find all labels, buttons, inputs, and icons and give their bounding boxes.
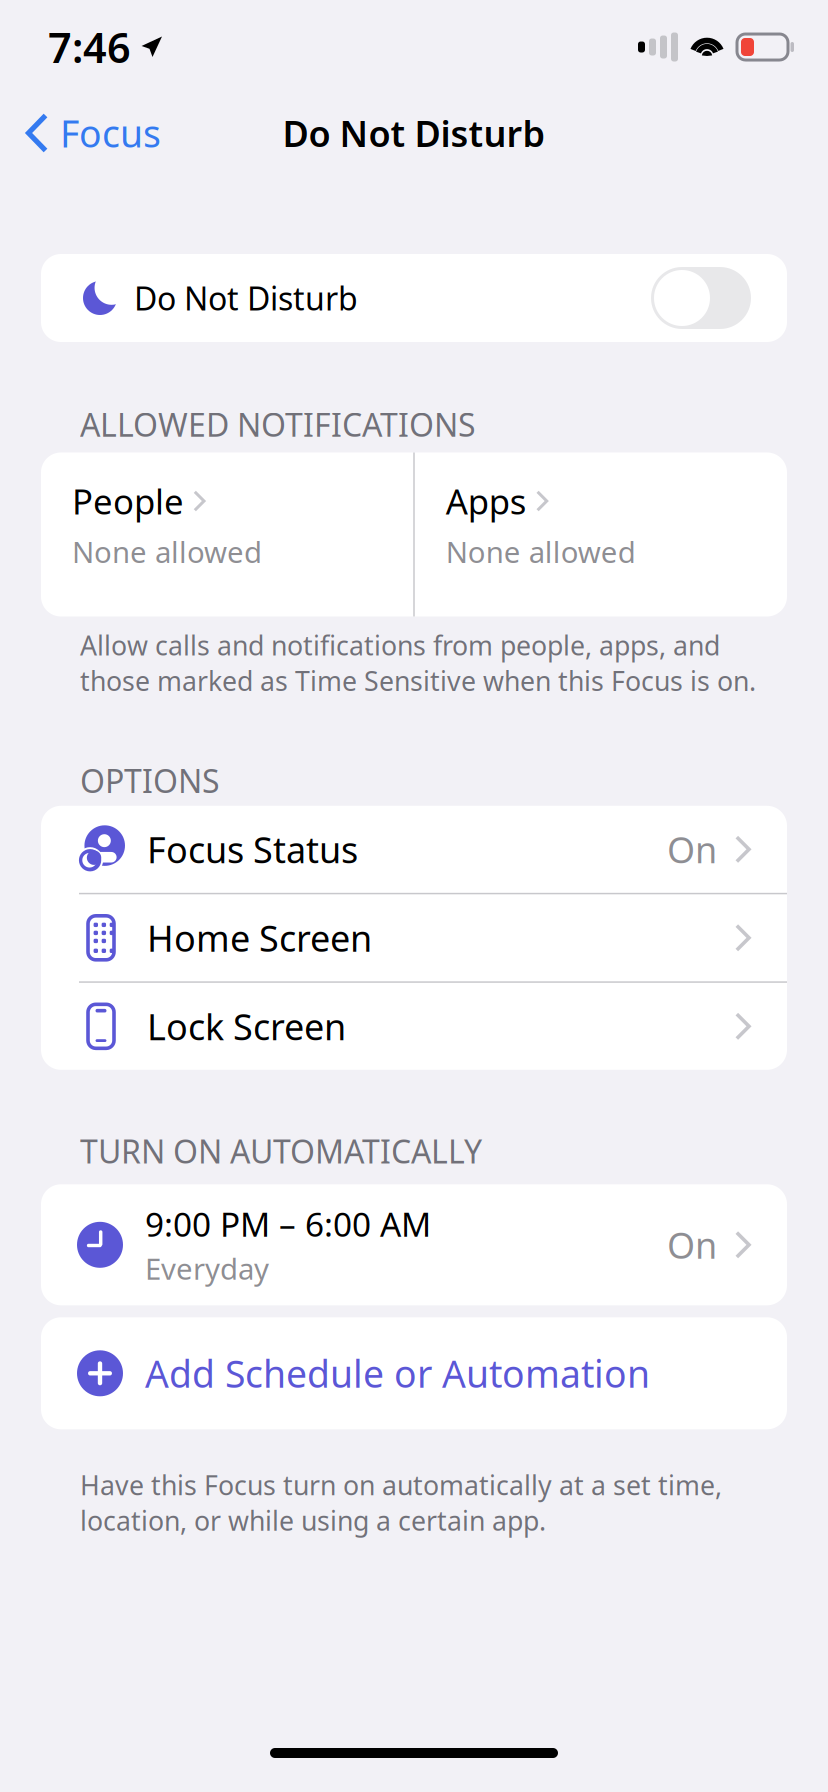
- staticText: Focus Status: [147, 825, 358, 873]
- staticText: Focus: [60, 108, 161, 158]
- staticText: ALLOWED NOTIFICATIONS: [80, 403, 476, 445]
- staticText: Lock Screen: [147, 1002, 346, 1050]
- staticText: Have this Focus turn on automatically at…: [80, 1467, 722, 1503]
- button[interactable]: Apps: [415, 452, 787, 616]
- staticText: Everyday: [145, 1249, 269, 1288]
- staticText: those marked as Time Sensitive when this…: [80, 663, 756, 698]
- staticText: People: [72, 478, 184, 524]
- button[interactable]: Add Schedule or Automation: [0, 1317, 828, 1429]
- button[interactable]: Lock Screen: [41, 983, 787, 1070]
- staticText: Add Schedule or Automation: [145, 1348, 650, 1398]
- button[interactable]: Focus: [0, 98, 177, 168]
- staticText: OPTIONS: [80, 759, 220, 802]
- staticText: TURN ON AUTOMATICALLY: [80, 1130, 482, 1172]
- staticText: Do Not Disturb: [134, 277, 358, 319]
- staticText: Home Screen: [147, 914, 372, 962]
- staticText: Allow calls and notifications from peopl…: [80, 627, 720, 663]
- button[interactable]: Home Screen: [41, 894, 787, 981]
- staticText: None allowed: [72, 532, 262, 571]
- button[interactable]: Do Not Disturb: [0, 254, 828, 342]
- staticText: 7:46: [48, 20, 131, 74]
- button[interactable]: Focus Status: [41, 806, 787, 893]
- staticText: 9:00 PM – 6:00 AM: [145, 1202, 431, 1246]
- staticText: Do Not Disturb: [282, 109, 545, 157]
- staticText: Apps: [446, 478, 527, 524]
- button[interactable]: 9:00 PM – 6:00 AM: [0, 1184, 828, 1305]
- staticText: On: [667, 825, 717, 873]
- staticText: location, or while using a certain app.: [80, 1503, 546, 1538]
- button[interactable]: People: [41, 452, 413, 616]
- staticText: None allowed: [446, 532, 636, 571]
- staticText: On: [667, 1221, 717, 1269]
